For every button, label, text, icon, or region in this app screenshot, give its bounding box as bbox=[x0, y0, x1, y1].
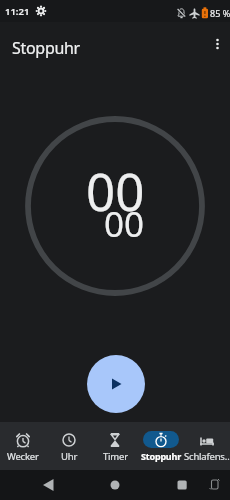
staticText: Uhr bbox=[61, 450, 78, 463]
button[interactable]: Stoppuhr bbox=[138, 422, 184, 470]
button[interactable]: Timer bbox=[92, 422, 138, 470]
staticText: Schlafens… bbox=[184, 450, 230, 463]
staticText: 00 bbox=[86, 156, 145, 225]
staticText: Wecker bbox=[7, 450, 39, 463]
staticText: Stoppuhr bbox=[12, 37, 80, 59]
button[interactable]: Wecker bbox=[0, 422, 46, 470]
button[interactable] bbox=[76, 470, 153, 500]
button[interactable] bbox=[87, 355, 145, 413]
staticText: 11:21 bbox=[5, 5, 30, 18]
button[interactable] bbox=[206, 33, 228, 55]
staticText: 85 % bbox=[210, 7, 230, 19]
button[interactable]: Schlafens… bbox=[184, 422, 230, 470]
button[interactable] bbox=[153, 470, 230, 500]
staticText: Stoppuhr bbox=[141, 450, 181, 462]
staticText: 00 bbox=[104, 200, 145, 248]
button[interactable]: Uhr bbox=[46, 422, 92, 470]
staticText: Timer bbox=[103, 450, 128, 463]
button[interactable] bbox=[0, 470, 76, 500]
